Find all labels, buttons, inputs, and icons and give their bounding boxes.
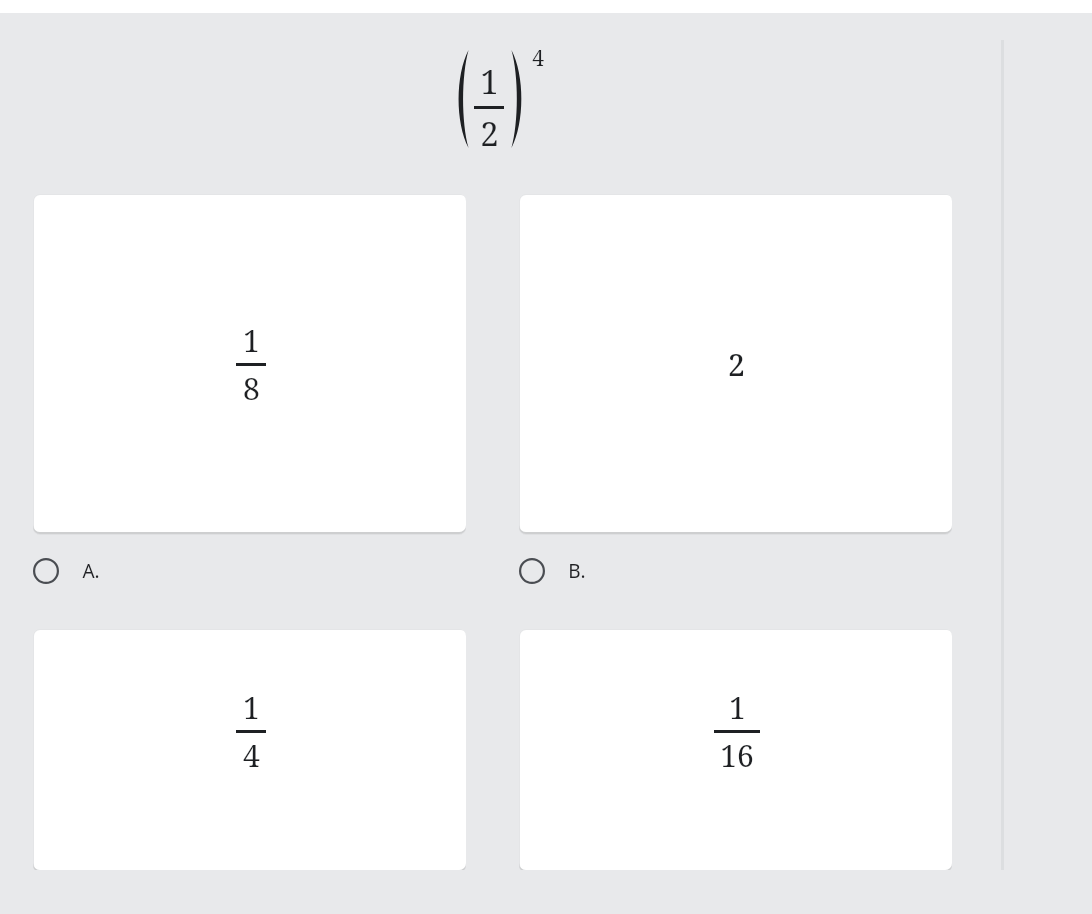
staticText: 1 <box>480 59 499 104</box>
staticText: 2 <box>480 111 499 156</box>
button[interactable]: 2 <box>519 194 952 532</box>
button[interactable]: 1 <box>519 629 952 870</box>
staticText: 16 <box>720 735 754 776</box>
staticText: B. <box>568 558 586 584</box>
button[interactable]: 1 <box>33 629 466 870</box>
staticText: 1 <box>729 687 746 728</box>
button[interactable]: B. <box>519 551 586 591</box>
button[interactable]: A. <box>33 551 100 591</box>
staticText: 8 <box>243 368 260 409</box>
staticText: 4 <box>532 44 544 73</box>
staticText: 2 <box>728 344 745 385</box>
staticText: 4 <box>243 735 260 776</box>
button[interactable]: 1 <box>33 194 466 532</box>
staticText: 1 <box>243 687 260 728</box>
staticText: A. <box>82 558 100 584</box>
staticText: 1 <box>243 320 260 361</box>
